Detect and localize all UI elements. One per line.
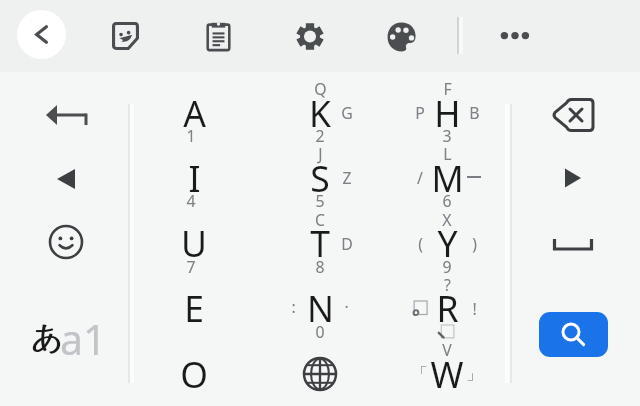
- staticText: 4: [186, 190, 196, 212]
- staticText: あ: [31, 318, 63, 357]
- staticText: V: [442, 339, 452, 361]
- staticText: ·: [344, 296, 349, 318]
- staticText: 「: [412, 364, 428, 384]
- button[interactable]: Theme: [376, 11, 427, 63]
- staticText: K: [309, 89, 331, 137]
- staticText: N: [307, 284, 334, 332]
- staticText: I: [188, 154, 201, 202]
- staticText: 5: [315, 190, 325, 212]
- staticText: 6: [442, 190, 452, 212]
- staticText: (: [418, 233, 423, 255]
- staticText: X: [442, 209, 452, 231]
- button[interactable]: More options: [490, 11, 540, 61]
- staticText: a1: [60, 311, 107, 367]
- button[interactable]: Search: [539, 312, 608, 357]
- button[interactable]: Switch language: [288, 344, 352, 404]
- button[interactable]: Clipboard: [194, 10, 243, 62]
- button[interactable]: あ: [0, 300, 122, 378]
- staticText: 3: [442, 125, 452, 147]
- button[interactable]: Backspace word: [24, 82, 108, 148]
- staticText: /: [417, 167, 423, 189]
- staticText: A: [183, 89, 206, 137]
- staticText: C: [315, 209, 325, 231]
- staticText: S: [310, 154, 330, 202]
- staticText: H: [434, 89, 461, 137]
- staticText: Y: [437, 219, 458, 267]
- staticText: G: [341, 102, 353, 124]
- staticText: 7: [186, 256, 196, 278]
- staticText: U: [181, 219, 207, 267]
- staticText: R: [436, 284, 459, 332]
- staticText: 1: [186, 125, 196, 147]
- staticText: :: [291, 296, 296, 318]
- staticText: T: [310, 219, 330, 267]
- button[interactable]: Emoji: [24, 210, 108, 274]
- staticText: Q: [314, 78, 327, 100]
- staticText: F: [443, 78, 452, 100]
- staticText: 9: [442, 256, 452, 278]
- staticText: J: [318, 143, 323, 165]
- staticText: 0: [315, 321, 325, 343]
- button[interactable]: Move cursor right: [541, 150, 605, 206]
- staticText: P: [415, 102, 425, 124]
- button[interactable]: Back: [17, 10, 66, 59]
- staticText: E: [184, 284, 204, 332]
- staticText: ?: [444, 274, 451, 296]
- staticText: W: [430, 350, 464, 398]
- staticText: B: [469, 102, 480, 124]
- staticText: D: [341, 233, 353, 255]
- button[interactable]: Move cursor left: [24, 148, 108, 210]
- staticText: L: [443, 143, 452, 165]
- staticText: 」: [466, 364, 482, 384]
- button[interactable]: Stickers: [101, 11, 150, 61]
- staticText: !: [472, 298, 477, 320]
- staticText: O: [180, 350, 208, 398]
- staticText: Z: [342, 167, 352, 189]
- button[interactable]: Space: [541, 215, 605, 273]
- staticText: M: [431, 154, 464, 202]
- staticText: ): [472, 233, 477, 255]
- staticText: あ: [32, 318, 64, 357]
- staticText: 2: [315, 125, 325, 147]
- button[interactable]: Settings: [285, 11, 335, 62]
- button[interactable]: Delete: [541, 85, 605, 145]
- staticText: 8: [315, 256, 325, 278]
